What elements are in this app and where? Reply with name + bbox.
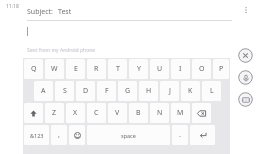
staticText: S	[63, 86, 67, 96]
staticText: C	[94, 108, 99, 118]
button[interactable]: E	[66, 59, 85, 79]
staticText: space	[121, 132, 136, 139]
button[interactable]: More options	[240, 4, 252, 16]
button[interactable]: Z	[45, 103, 64, 123]
staticText: G	[125, 86, 131, 96]
button[interactable]: I	[171, 59, 190, 79]
button[interactable]: &123	[24, 125, 49, 145]
button[interactable]	[192, 103, 211, 123]
staticText: Subject:	[27, 7, 53, 17]
staticText: Y	[137, 64, 141, 74]
button[interactable]: T	[108, 59, 127, 79]
button[interactable]: P	[213, 59, 229, 79]
button[interactable]: L	[202, 81, 221, 101]
button[interactable]: Change keyboard	[238, 92, 253, 107]
staticText: Sent from my Android phone	[27, 47, 96, 54]
button[interactable]: space	[87, 125, 170, 145]
button[interactable]: C	[87, 103, 106, 123]
staticText: A	[41, 86, 46, 96]
staticText: &123	[30, 132, 44, 139]
button[interactable]: Voice input	[238, 70, 253, 85]
staticText: Z	[52, 108, 57, 118]
staticText: D	[83, 86, 89, 96]
staticText: V	[115, 108, 120, 118]
button[interactable]: K	[181, 81, 200, 101]
staticText: E	[74, 64, 78, 74]
button[interactable]: ,	[51, 125, 67, 145]
button[interactable]: Close keyboard	[238, 48, 253, 63]
staticText: ,	[58, 130, 60, 140]
staticText: I	[179, 64, 182, 74]
staticText: T	[116, 64, 120, 74]
staticText: 11:18	[6, 3, 19, 10]
button[interactable]: F	[97, 81, 116, 101]
staticText: J	[169, 86, 171, 96]
button[interactable]	[69, 125, 85, 145]
button[interactable]: U	[150, 59, 169, 79]
button[interactable]: H	[139, 81, 158, 101]
staticText: .	[179, 130, 181, 140]
staticText: U	[157, 64, 163, 74]
button[interactable]: G	[118, 81, 137, 101]
staticText: O	[199, 64, 205, 74]
staticText: Q	[31, 64, 37, 74]
button[interactable]	[190, 125, 215, 145]
button[interactable]: J	[160, 81, 179, 101]
button[interactable]: B	[129, 103, 148, 123]
staticText: X	[73, 108, 78, 118]
staticText: R	[94, 64, 99, 74]
staticText: N	[157, 108, 163, 118]
button[interactable]: S	[55, 81, 74, 101]
staticText: H	[146, 86, 152, 96]
button[interactable]: R	[87, 59, 106, 79]
staticText: L	[210, 86, 214, 96]
staticText: Test	[58, 7, 72, 17]
button[interactable]: A	[34, 81, 53, 101]
staticText: W	[51, 64, 58, 74]
button[interactable]: O	[192, 59, 211, 79]
staticText: B	[136, 108, 141, 118]
button[interactable]	[24, 103, 43, 123]
button[interactable]: .	[172, 125, 188, 145]
staticText: M	[177, 108, 184, 118]
button[interactable]: M	[171, 103, 190, 123]
staticText: P	[219, 64, 224, 74]
button[interactable]: Q	[24, 59, 43, 79]
button[interactable]: V	[108, 103, 127, 123]
staticText: K	[188, 86, 193, 96]
button[interactable]: N	[150, 103, 169, 123]
staticText: F	[105, 86, 109, 96]
button[interactable]: Y	[129, 59, 148, 79]
button[interactable]: D	[76, 81, 95, 101]
button[interactable]: X	[66, 103, 85, 123]
button[interactable]: W	[45, 59, 64, 79]
